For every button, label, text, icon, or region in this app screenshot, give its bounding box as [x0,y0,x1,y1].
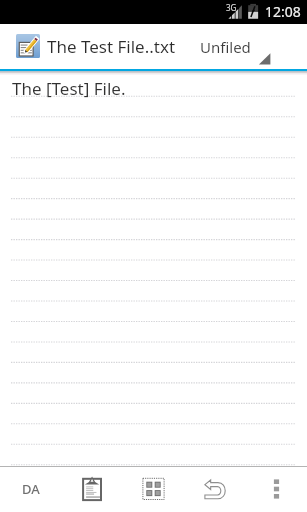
button[interactable]: More options [246,467,307,512]
staticText: 3G [226,2,237,13]
button[interactable]: Undo [185,467,246,512]
staticText: 12:08 [265,2,301,21]
button[interactable]: Unfiled [193,28,273,64]
button[interactable]: The Test File..txt [47,35,176,58]
button[interactable]: Notes [62,467,124,512]
button[interactable]: DA [0,467,62,512]
staticText: The [Test] File. [12,77,126,100]
staticText: DA [22,480,40,498]
staticText: Unfiled [200,37,251,57]
button[interactable]: Document [16,34,40,58]
button[interactable]: Apps [124,467,185,512]
